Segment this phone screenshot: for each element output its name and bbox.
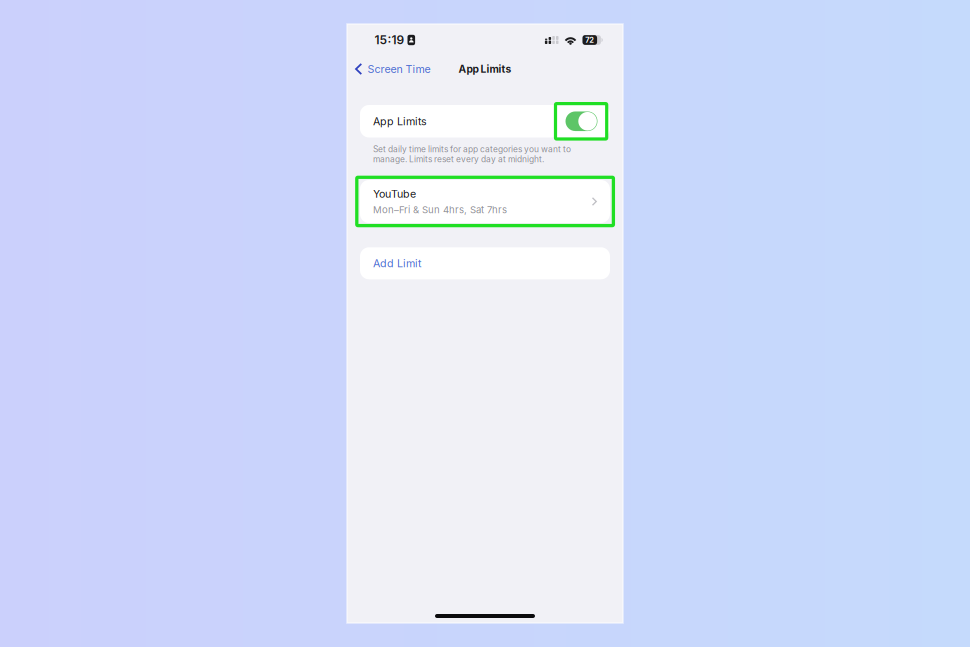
staticText: 72: [585, 35, 594, 44]
staticText: Set daily time limits for app categories…: [373, 144, 571, 164]
staticText: Add Limit: [373, 257, 421, 270]
staticText: Mon–Fri & Sun 4hrs, Sat 7hrs: [373, 204, 507, 216]
button[interactable]: Screen Time: [347, 58, 437, 79]
staticText: App Limits: [458, 63, 511, 75]
button[interactable]: Add Limit: [360, 247, 610, 279]
button[interactable]: App Limits: [565, 111, 597, 131]
staticText: YouTube: [373, 187, 416, 200]
staticText: 15:19: [374, 33, 404, 47]
button[interactable]: YouTube: [360, 180, 610, 223]
staticText: App Limits: [373, 115, 427, 128]
staticText: Screen Time: [367, 62, 430, 75]
